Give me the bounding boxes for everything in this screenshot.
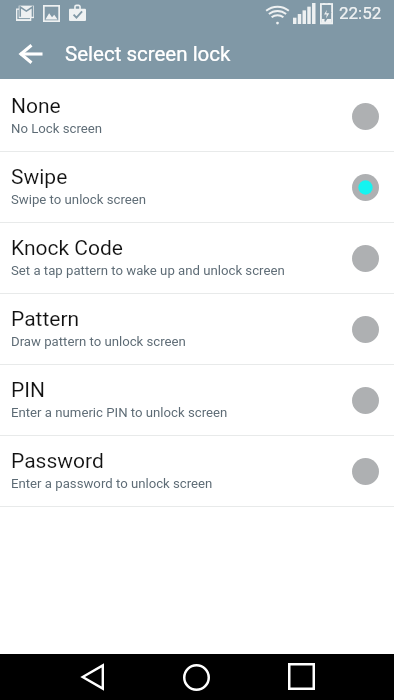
staticText: Draw pattern to unlock screen — [11, 334, 186, 349]
button[interactable]: PIN — [0, 365, 394, 436]
button[interactable]: None — [0, 81, 394, 152]
button[interactable]: Navigate up — [7, 30, 54, 77]
button[interactable]: Password — [0, 436, 394, 507]
staticText: Password — [11, 449, 104, 474]
button[interactable]: Back — [68, 663, 117, 691]
button[interactable]: Swipe — [0, 152, 394, 223]
button[interactable]: Recent apps — [277, 662, 326, 690]
staticText: Enter a password to unlock screen — [11, 476, 213, 491]
staticText: Swipe to unlock screen — [11, 192, 147, 207]
staticText: None — [11, 94, 61, 119]
button[interactable]: Knock Code — [0, 223, 394, 294]
staticText: Swipe — [11, 165, 68, 190]
button[interactable]: Pattern — [0, 294, 394, 365]
staticText: PIN — [11, 378, 45, 403]
staticText: 22:52 — [339, 3, 382, 23]
staticText: Set a tap pattern to wake up and unlock … — [11, 263, 285, 278]
staticText: Pattern — [11, 307, 80, 332]
staticText: Enter a numeric PIN to unlock screen — [11, 405, 228, 420]
staticText: No Lock screen — [11, 121, 103, 136]
staticText: Select screen lock — [65, 42, 231, 66]
button[interactable]: Home — [172, 663, 221, 691]
staticText: Knock Code — [11, 236, 123, 261]
